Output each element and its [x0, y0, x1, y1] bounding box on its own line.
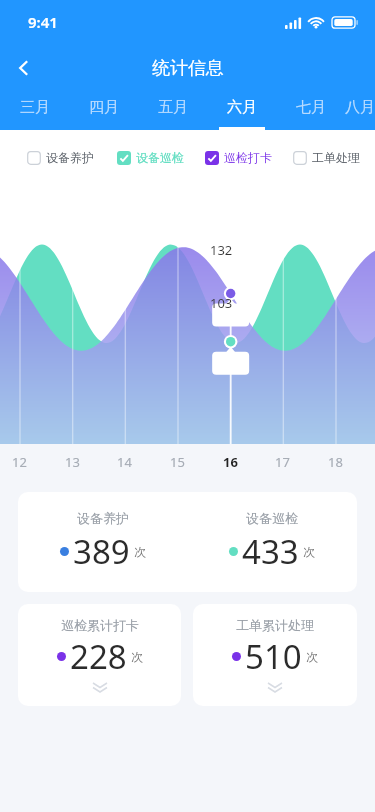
staticText: 次 — [134, 544, 146, 559]
staticText: 433 — [242, 529, 299, 574]
button[interactable]: 三月 — [0, 92, 69, 130]
staticText: 七月 — [296, 98, 326, 117]
staticText: 统计信息 — [152, 57, 224, 80]
staticText: 设备养护 — [46, 150, 94, 165]
staticText: 17 — [275, 453, 290, 471]
staticText: 次 — [303, 544, 315, 559]
button[interactable]: 八月 — [345, 92, 375, 130]
staticText: 389 — [73, 529, 130, 574]
staticText: 巡检累计打卡 — [61, 617, 139, 633]
staticText: 228 — [70, 634, 127, 679]
staticText: 13 — [65, 453, 80, 471]
staticText: 三月 — [20, 98, 50, 117]
staticText: 八月 — [345, 98, 375, 117]
staticText: 510 — [245, 634, 302, 679]
button[interactable]: 巡检打卡 — [205, 150, 272, 165]
staticText: 设备巡检 — [136, 150, 184, 165]
staticText: 103 — [210, 294, 233, 312]
staticText: 六月 — [227, 98, 257, 117]
staticText: 12 — [12, 453, 27, 471]
button[interactable]: Back — [0, 44, 48, 92]
button[interactable]: 五月 — [138, 92, 207, 130]
button[interactable]: 工单处理 — [293, 150, 360, 165]
button[interactable]: 设备养护 — [27, 150, 94, 165]
button[interactable]: 六月 — [207, 92, 276, 130]
button[interactable]: 设备巡检 — [117, 150, 184, 165]
staticText: 14 — [117, 453, 132, 471]
staticText: 巡检打卡 — [224, 150, 272, 165]
staticText: 次 — [131, 649, 143, 664]
staticText: 18 — [328, 453, 343, 471]
staticText: 设备养护 — [77, 510, 129, 526]
staticText: 工单处理 — [312, 150, 360, 165]
staticText: 132 — [210, 241, 233, 259]
button[interactable]: 工单累计处理 — [193, 604, 357, 706]
staticText: 工单累计处理 — [236, 617, 314, 633]
button[interactable]: 七月 — [276, 92, 345, 130]
staticText: 16 — [223, 453, 238, 471]
staticText: 9:41 — [28, 12, 58, 32]
staticText: 15 — [170, 453, 185, 471]
staticText: 设备巡检 — [246, 510, 298, 526]
staticText: 五月 — [158, 98, 188, 117]
staticText: 次 — [306, 649, 318, 664]
button[interactable]: 巡检累计打卡 — [18, 604, 181, 706]
button[interactable]: 四月 — [69, 92, 138, 130]
button[interactable]: 设备养护 — [18, 492, 357, 592]
staticText: 四月 — [89, 98, 119, 117]
